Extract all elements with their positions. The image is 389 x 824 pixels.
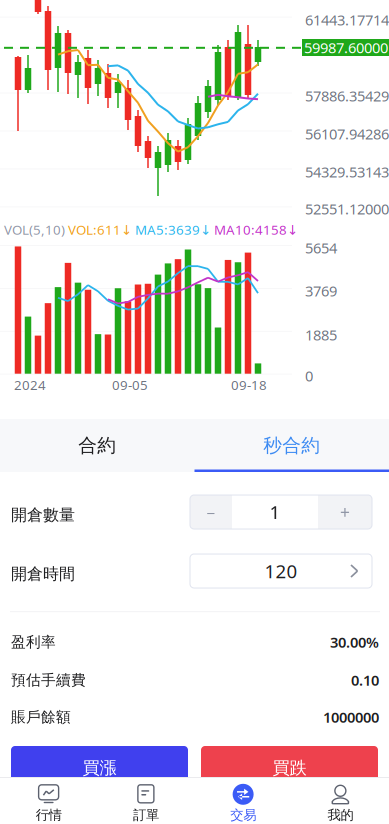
staticText: 訂單 [133, 807, 159, 823]
staticText: 57886.35429 [305, 86, 389, 105]
button[interactable]: 買漲 [11, 746, 188, 790]
staticText: 52551.12000 [305, 199, 389, 218]
staticText: VOL(5,10) [4, 221, 65, 238]
staticText: 09-05 [112, 376, 148, 394]
staticText: 5654 [305, 238, 337, 257]
staticText: 合約 [78, 434, 116, 457]
staticText: 120 [264, 559, 297, 583]
staticText: 賬戶餘額 [11, 708, 71, 726]
staticText: MA5:3639↓ [135, 221, 211, 238]
staticText: MA10:4158↓ [214, 221, 298, 238]
staticText: 預估手續費 [11, 671, 86, 689]
staticText: 1 [269, 500, 280, 524]
staticText: 買跌 [272, 757, 306, 779]
staticText: 我的 [327, 807, 353, 823]
staticText: 1000000 [323, 707, 379, 727]
staticText: 開倉時間 [11, 564, 75, 584]
staticText: 2024 [14, 376, 46, 394]
button[interactable]: + [318, 495, 372, 529]
staticText: 56107.94286 [305, 124, 389, 143]
staticText: 1885 [305, 325, 337, 344]
staticText: 行情 [36, 807, 62, 823]
staticText: 交易 [230, 807, 256, 823]
button[interactable]: 120 [190, 554, 372, 588]
staticText: 盈利率 [11, 633, 56, 651]
staticText: VOL:611↓ [68, 221, 132, 238]
button[interactable]: 訂單 [97, 778, 194, 824]
staticText: 0.10 [351, 670, 379, 690]
staticText: + [340, 500, 350, 523]
staticText: 開倉數量 [11, 505, 75, 525]
staticText: 59987.60000 [304, 38, 388, 57]
button[interactable]: 秒合約 [194, 419, 389, 472]
staticText: 30.00% [330, 632, 379, 652]
staticText: 54329.53143 [305, 162, 389, 181]
staticText: 0 [305, 366, 313, 385]
staticText: 秒合約 [263, 434, 320, 457]
button[interactable]: 交易 [194, 778, 292, 824]
button[interactable]: 我的 [292, 778, 389, 824]
staticText: 3769 [305, 281, 337, 300]
button[interactable]: 行情 [0, 778, 97, 824]
button[interactable]: 買跌 [201, 746, 378, 790]
staticText: 61443.17714 [305, 10, 389, 29]
staticText: – [206, 500, 215, 523]
staticText: 買漲 [82, 757, 116, 779]
staticText: 09-18 [231, 376, 267, 394]
button[interactable]: – [190, 495, 232, 529]
button[interactable]: 合約 [0, 419, 194, 472]
